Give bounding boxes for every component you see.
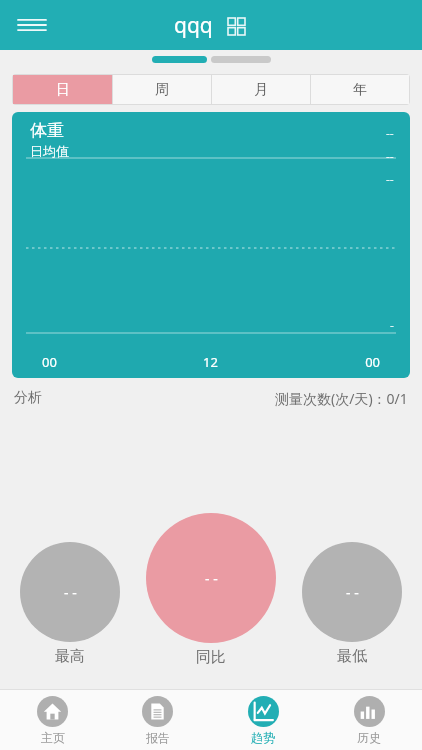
staticText: -- — [386, 125, 394, 141]
staticText: 月 — [254, 81, 268, 99]
staticText: - - — [64, 583, 77, 602]
button[interactable]: Menu — [10, 3, 54, 47]
button[interactable] — [211, 56, 271, 63]
staticText: - — [390, 317, 394, 333]
button[interactable]: 趋势 — [210, 690, 316, 750]
button[interactable]: - - — [146, 513, 276, 667]
staticText: -- — [386, 148, 394, 164]
button[interactable]: 月 — [212, 75, 310, 104]
staticText: 00 — [42, 353, 154, 371]
staticText: 测量次数(次/天)：0/1 — [275, 389, 408, 408]
staticText: - - — [205, 569, 218, 588]
staticText: 最低 — [337, 647, 367, 666]
button[interactable]: 日 — [13, 75, 112, 104]
button[interactable]: 年 — [311, 75, 409, 104]
staticText: 主页 — [41, 730, 65, 745]
staticText: 同比 — [196, 648, 226, 667]
button[interactable]: 周 — [113, 75, 211, 104]
button[interactable]: - - — [302, 542, 402, 666]
staticText: -- — [386, 171, 394, 187]
staticText: 体重 — [30, 120, 64, 141]
button[interactable]: - - — [20, 542, 120, 666]
staticText: 日均值 — [30, 143, 69, 159]
staticText: 周 — [155, 81, 169, 99]
staticText: 最高 — [55, 647, 85, 666]
button[interactable]: Grid — [223, 13, 249, 39]
staticText: - - — [346, 583, 359, 602]
button[interactable]: 体重 — [12, 112, 410, 378]
button[interactable] — [152, 56, 207, 63]
button[interactable]: 历史 — [316, 690, 422, 750]
staticText: 报告 — [146, 730, 170, 745]
staticText: qqq — [174, 11, 213, 40]
button[interactable]: 主页 — [0, 690, 105, 750]
staticText: 年 — [353, 81, 367, 99]
staticText: 历史 — [357, 730, 381, 745]
staticText: 趋势 — [251, 730, 275, 745]
button[interactable]: 报告 — [105, 690, 210, 750]
staticText: 12 — [154, 353, 267, 371]
staticText: 00 — [267, 353, 380, 371]
staticText: 日 — [56, 81, 70, 99]
staticText: 分析 — [14, 389, 42, 407]
